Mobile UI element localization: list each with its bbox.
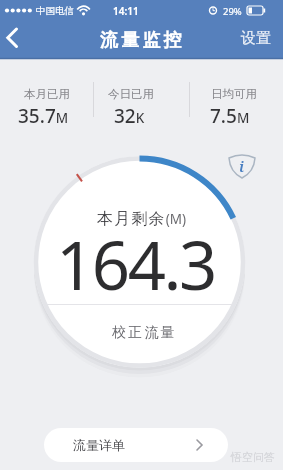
staticText: 日均可用 [211,87,257,101]
staticText: 流量监控 [100,29,185,52]
staticText: 7.5M [210,103,250,127]
staticText: 流量详单 [73,437,125,453]
button[interactable] [0,21,40,59]
staticText: 32K [114,103,145,127]
staticText: 悟空问答 [231,450,275,464]
staticText: i [239,156,245,176]
staticText: 今日已用 [108,87,154,101]
staticText: 中国电信 [36,5,74,17]
staticText: 164.3 [56,218,215,302]
button[interactable]: 校正流量 [0,0,200,40]
button[interactable]: i [226,150,258,182]
staticText: 本月剩余(M) [97,209,187,229]
staticText: 29% [223,5,242,18]
staticText: 校正流量 [112,324,177,342]
staticText: 35.7M [18,103,69,127]
button[interactable]: 设置 [0,0,54,36]
staticText: 14:11 [113,4,139,18]
staticText: 设置 [241,29,271,48]
button[interactable] [44,428,228,462]
staticText: 本月已用 [24,87,70,101]
